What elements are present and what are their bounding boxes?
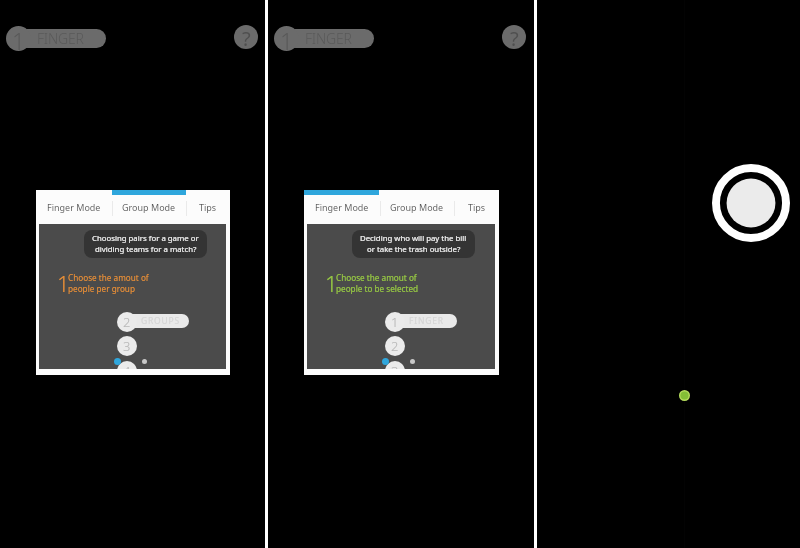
staticText: Group Mode <box>390 201 444 213</box>
staticText: 1 <box>280 26 294 50</box>
staticText: people to be selected <box>336 283 419 294</box>
staticText: Choose the amout of <box>336 272 417 283</box>
staticText: Finger Mode <box>47 201 101 213</box>
staticText: 2 <box>391 337 399 355</box>
staticText: Tips <box>468 201 486 213</box>
button[interactable]: Option 4 <box>117 361 137 369</box>
staticText: ? <box>510 25 519 49</box>
button[interactable]: Capture fingerprint <box>712 164 790 242</box>
staticText: Choosing pairs for a game or <box>92 233 199 244</box>
staticText: 3 <box>123 337 131 355</box>
button[interactable]: Help <box>502 25 526 49</box>
staticText: FINGER <box>37 29 84 48</box>
button[interactable]: Group Mode <box>380 190 454 224</box>
staticText: Choose the amout of <box>68 272 149 283</box>
staticText: 2 <box>123 313 131 331</box>
staticText: 3 <box>391 362 399 369</box>
button[interactable]: Sensor status <box>679 390 690 401</box>
button[interactable]: Select 2 GROUPS <box>122 314 189 328</box>
button[interactable]: 1 FINGER mode selector <box>6 26 107 51</box>
staticText: Deciding who will pay the bill <box>360 233 467 244</box>
button[interactable]: Option 1 <box>385 312 405 332</box>
staticText: dividing teams for a match? <box>95 244 197 255</box>
staticText: GROUPS <box>141 315 180 327</box>
button[interactable]: Option 3 <box>385 361 405 369</box>
button[interactable]: Finger Mode <box>36 190 112 224</box>
staticText: 4 <box>123 362 131 369</box>
staticText: 1 <box>325 268 338 298</box>
button[interactable]: Option 2 <box>117 312 137 332</box>
button[interactable]: Select 1 FINGER <box>390 314 457 328</box>
staticText: or take the trash outside? <box>367 244 461 255</box>
staticText: Finger Mode <box>315 201 369 213</box>
staticText: FINGER <box>305 29 352 48</box>
staticText: 1 <box>57 268 70 298</box>
button[interactable]: Tips <box>186 190 230 224</box>
staticText: ? <box>242 25 251 49</box>
staticText: Tips <box>199 201 217 213</box>
button[interactable]: Finger Mode <box>304 190 380 224</box>
staticText: 1 <box>12 26 26 50</box>
staticText: people per group <box>68 283 135 294</box>
button[interactable]: Help <box>234 25 258 49</box>
button[interactable]: Tips <box>454 190 499 224</box>
staticText: FINGER <box>409 315 444 327</box>
button[interactable]: Option 2 <box>385 336 405 356</box>
staticText: 1 <box>391 313 399 331</box>
button[interactable]: Option 3 <box>117 336 137 356</box>
button[interactable]: Group Mode <box>112 190 186 224</box>
button[interactable]: 1 FINGER mode selector <box>274 26 375 51</box>
staticText: Group Mode <box>122 201 176 213</box>
